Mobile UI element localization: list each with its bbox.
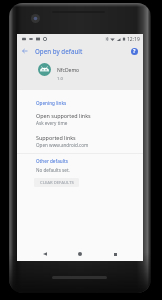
button[interactable]: Help (129, 46, 140, 57)
staticText: Opening links (36, 100, 67, 106)
button[interactable]: Back (38, 247, 52, 261)
staticText: Ask every time (36, 120, 68, 126)
staticText: No defaults set. (36, 167, 70, 173)
staticText: Supported links (36, 134, 76, 141)
button[interactable]: Supported links (17, 133, 143, 150)
button[interactable]: Back (19, 45, 31, 57)
button[interactable]: CLEAR DEFAULTS (34, 178, 79, 187)
staticText: Open supported links (36, 112, 91, 119)
staticText: NfcDemo (57, 67, 80, 74)
staticText: CLEAR DEFAULTS (40, 180, 74, 186)
staticText: Open www.android.com (36, 142, 89, 148)
staticText: Other defaults (36, 158, 68, 164)
button[interactable]: Open supported links (17, 111, 143, 128)
button[interactable]: Home (73, 247, 87, 261)
staticText: 12:19 (127, 36, 140, 43)
staticText: 1.0 (57, 76, 63, 82)
staticText: ? (133, 48, 136, 55)
staticText: Open by default (35, 47, 83, 55)
button[interactable]: Recent apps (108, 247, 122, 261)
